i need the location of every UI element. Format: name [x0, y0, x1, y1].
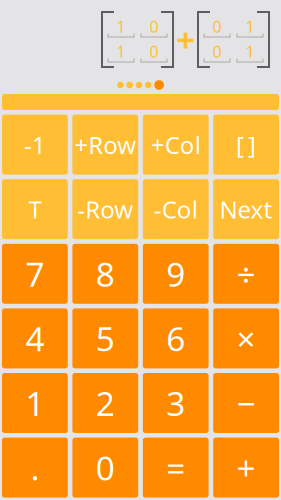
button[interactable]: -Row: [72, 179, 138, 239]
staticText: +Row: [74, 129, 136, 161]
button[interactable]: 8: [72, 244, 138, 304]
staticText: 2: [96, 381, 115, 425]
button[interactable]: 6: [143, 308, 209, 368]
staticText: 0: [212, 16, 221, 37]
button[interactable]: -1: [2, 115, 68, 175]
button[interactable]: +Row: [72, 115, 138, 175]
button[interactable]: ÷: [213, 244, 279, 304]
button[interactable]: [ ]: [213, 115, 279, 175]
button[interactable]: T: [2, 179, 68, 239]
staticText: -Row: [77, 193, 133, 225]
staticText: 7: [25, 252, 44, 296]
staticText: .: [30, 445, 39, 490]
staticText: =: [166, 445, 185, 490]
button[interactable]: 0: [72, 438, 138, 498]
button[interactable]: +Col: [143, 115, 209, 175]
staticText: 1: [116, 16, 125, 37]
button[interactable]: 7: [2, 244, 68, 304]
staticText: 0: [149, 16, 158, 37]
button[interactable]: -Col: [143, 179, 209, 239]
staticText: 6: [166, 316, 185, 361]
staticText: 0: [212, 41, 221, 62]
staticText: +Col: [151, 129, 201, 161]
staticText: -Col: [154, 193, 198, 225]
staticText: 4: [25, 316, 44, 361]
button[interactable]: .: [2, 438, 68, 498]
staticText: 1: [245, 41, 254, 62]
staticText: −: [237, 381, 256, 425]
button[interactable]: 1: [2, 373, 68, 433]
staticText: 1: [245, 16, 254, 37]
button[interactable]: 5: [72, 308, 138, 368]
staticText: -1: [24, 129, 46, 161]
staticText: 1: [25, 381, 44, 425]
button[interactable]: =: [143, 438, 209, 498]
staticText: 0: [96, 445, 115, 490]
staticText: ÷: [237, 252, 256, 296]
button[interactable]: 2: [72, 373, 138, 433]
button[interactable]: 9: [143, 244, 209, 304]
button[interactable]: 3: [143, 373, 209, 433]
button[interactable]: ×: [213, 308, 279, 368]
button[interactable]: +: [213, 438, 279, 498]
staticText: 5: [96, 316, 115, 361]
staticText: 1: [116, 41, 125, 62]
button[interactable]: [2, 94, 279, 110]
staticText: 3: [166, 381, 185, 425]
staticText: +: [237, 445, 256, 490]
staticText: 0: [149, 41, 158, 62]
staticText: 9: [166, 252, 185, 296]
staticText: ×: [237, 316, 256, 361]
button[interactable]: 4: [2, 308, 68, 368]
button[interactable]: Next: [213, 179, 279, 239]
staticText: Next: [220, 193, 273, 225]
button[interactable]: −: [213, 373, 279, 433]
staticText: T: [28, 193, 41, 225]
staticText: [ ]: [236, 129, 256, 161]
staticText: 8: [96, 252, 115, 296]
